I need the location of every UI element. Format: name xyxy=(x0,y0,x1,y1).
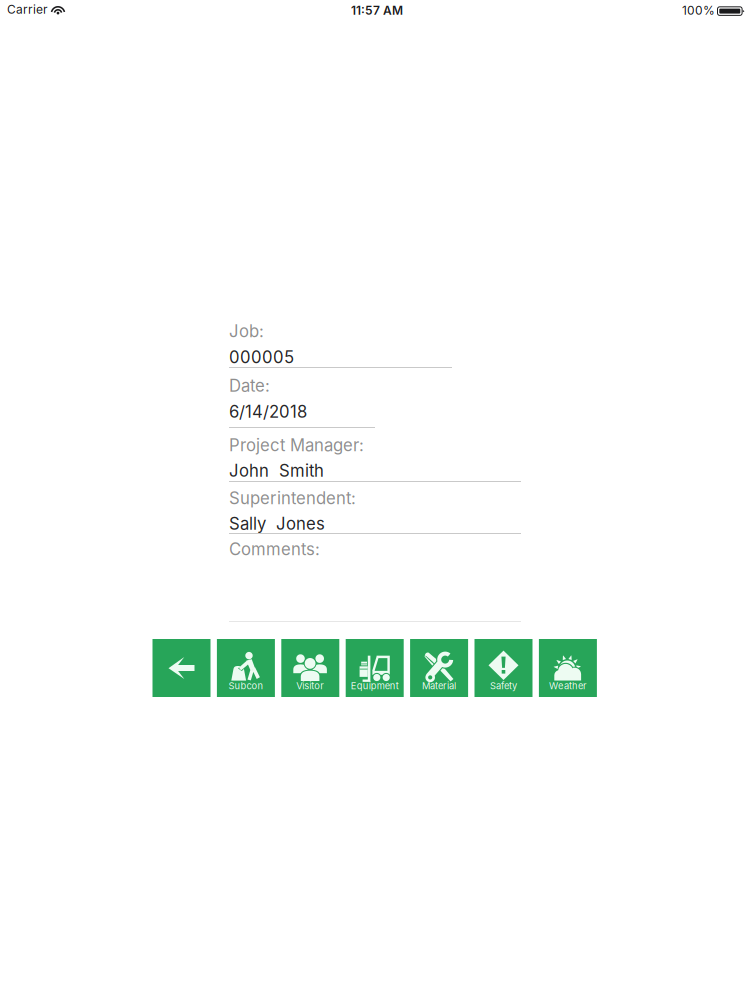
staticText: Sally Jones xyxy=(229,513,325,534)
button[interactable]: Visitor xyxy=(281,639,339,697)
staticText: Safety xyxy=(490,680,517,691)
staticText: 000005 xyxy=(229,347,294,367)
button[interactable]: Back xyxy=(152,639,210,697)
staticText: Date: xyxy=(229,375,270,396)
button[interactable]: Equipment xyxy=(346,639,404,697)
staticText: Project Manager: xyxy=(229,435,364,455)
staticText: Subcon xyxy=(228,680,263,691)
staticText: Comments: xyxy=(229,539,320,559)
button[interactable]: Subcon xyxy=(217,639,275,697)
staticText: 11:57 AM xyxy=(351,3,403,17)
staticText: Carrier xyxy=(7,2,48,17)
staticText: Visitor xyxy=(296,680,324,691)
button[interactable]: Weather xyxy=(539,639,597,697)
button[interactable]: Material xyxy=(410,639,468,697)
staticText: Material xyxy=(422,680,456,691)
staticText: 100% xyxy=(682,3,715,17)
staticText: Superintendent: xyxy=(229,488,356,508)
staticText: Weather xyxy=(549,680,587,691)
staticText: Job: xyxy=(229,321,264,341)
staticText: 6/14/2018 xyxy=(229,401,307,422)
staticText: John Smith xyxy=(229,460,324,481)
staticText: Equipment xyxy=(351,680,399,691)
button[interactable]: Safety xyxy=(474,639,532,697)
